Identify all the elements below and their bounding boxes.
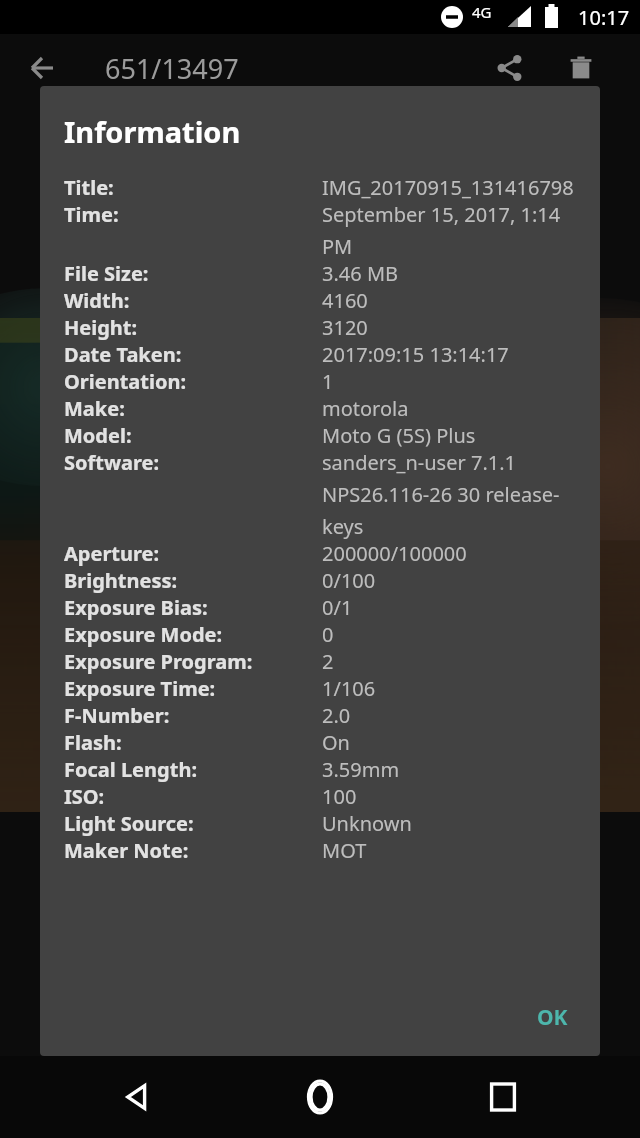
staticText: 0 [322, 621, 334, 648]
staticText: Unknown [322, 810, 412, 837]
staticText: 2017:09:15 13:14:17 [322, 341, 509, 368]
staticText: 651/13497 [105, 50, 239, 87]
staticText: Title: [64, 174, 114, 201]
staticText: sanders_n-user 7.1.1 NPS26.116-26 30 rel… [322, 449, 578, 540]
staticText: MOT [322, 837, 367, 864]
button[interactable]: Delete [555, 42, 607, 94]
staticText: Focal Length: [64, 756, 197, 783]
staticText: 2.0 [322, 702, 351, 729]
staticText: Maker Note: [64, 837, 189, 864]
staticText: Exposure Bias: [64, 594, 208, 621]
staticText: 4160 [322, 287, 368, 314]
button[interactable]: OK [525, 997, 580, 1038]
staticText: 2 [322, 648, 334, 675]
staticText: Exposure Mode: [64, 621, 223, 648]
staticText: Date Taken: [64, 341, 182, 368]
staticText: 3.46 MB [322, 260, 399, 287]
staticText: 1 [322, 368, 334, 395]
staticText: Orientation: [64, 368, 187, 395]
button[interactable]: Share [484, 42, 536, 94]
staticText: 3.59mm [322, 756, 400, 783]
staticText: Moto G (5S) Plus [322, 422, 476, 449]
button[interactable]: Home [286, 1063, 354, 1131]
staticText: 3120 [322, 314, 368, 341]
staticText: 0/100 [322, 567, 376, 594]
staticText: Model: [64, 422, 132, 449]
staticText: Time: [64, 201, 119, 228]
staticText: Aperture: [64, 540, 160, 567]
staticText: OK [537, 1003, 568, 1032]
staticText: On [322, 729, 350, 756]
staticText: 100 [322, 783, 357, 810]
staticText: 0/1 [322, 594, 353, 621]
staticText: IMG_20170915_131416798 [322, 174, 574, 201]
staticText: Exposure Time: [64, 675, 216, 702]
staticText: 4G [472, 2, 492, 22]
button[interactable]: Back [104, 1063, 172, 1131]
staticText: Software: [64, 449, 160, 476]
staticText: Exposure Program: [64, 648, 253, 675]
staticText: Width: [64, 287, 130, 314]
staticText: Flash: [64, 729, 122, 756]
staticText: Light Source: [64, 810, 194, 837]
staticText: F-Number: [64, 702, 170, 729]
staticText: Information [64, 112, 241, 151]
staticText: 1/106 [322, 675, 376, 702]
staticText: File Size: [64, 260, 149, 287]
staticText: motorola [322, 395, 409, 422]
button[interactable]: Recent apps [469, 1063, 537, 1131]
staticText: September 15, 2017, 1:14 PM [322, 201, 578, 260]
staticText: 10:17 [578, 4, 630, 31]
button[interactable]: Back [16, 42, 68, 94]
staticText: ISO: [64, 783, 105, 810]
staticText: Height: [64, 314, 138, 341]
staticText: Make: [64, 395, 125, 422]
staticText: Brightness: [64, 567, 178, 594]
staticText: 200000/100000 [322, 540, 467, 567]
